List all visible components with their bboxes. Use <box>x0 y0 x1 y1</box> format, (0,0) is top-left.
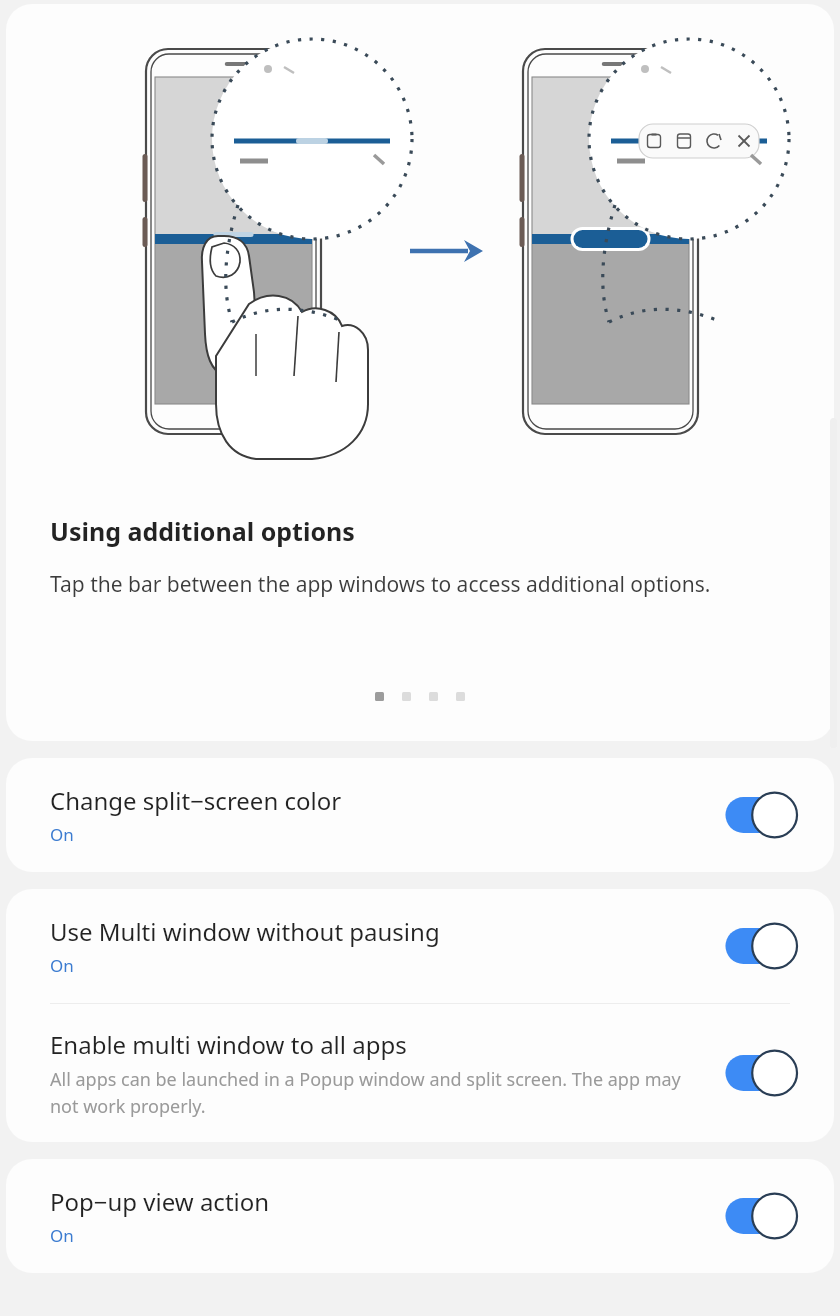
button[interactable]: Toggle setting <box>716 1188 802 1244</box>
staticText: All apps can be launched in a Popup wind… <box>50 1067 698 1118</box>
staticText: Pop−up view action <box>50 1185 270 1218</box>
button[interactable]: Toggle setting <box>716 787 802 843</box>
button[interactable]: Toggle setting <box>716 918 802 974</box>
staticText: Using additional options <box>50 514 355 548</box>
staticText: On <box>50 954 74 977</box>
button[interactable]: Toggle setting <box>716 1045 802 1101</box>
staticText: Enable multi window to all apps <box>50 1028 407 1061</box>
staticText: On <box>50 823 74 846</box>
staticText: Use Multi window without pausing <box>50 915 440 948</box>
button[interactable]: Pop−up view action <box>6 1159 834 1273</box>
staticText: Change split−screen color <box>50 784 342 817</box>
staticText: Tap the bar between the app windows to a… <box>50 570 711 599</box>
button[interactable]: Change split−screen color <box>6 758 834 872</box>
staticText: On <box>50 1224 74 1247</box>
button[interactable]: Enable multi window to all apps <box>6 1004 834 1142</box>
button[interactable]: Use Multi window without pausing <box>6 889 834 1003</box>
